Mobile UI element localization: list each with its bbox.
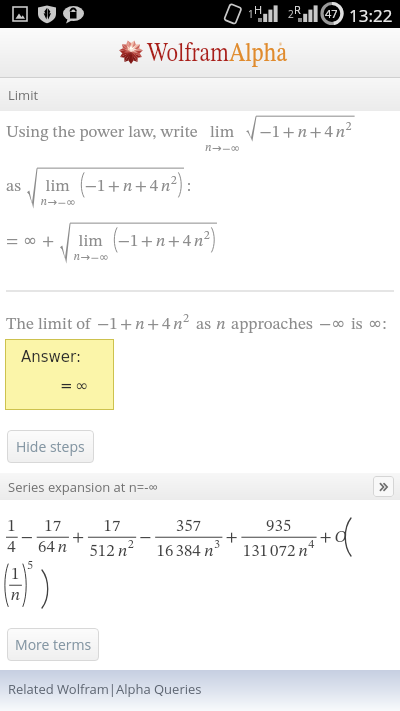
staticText: 47 <box>325 6 338 21</box>
staticText: 2 <box>288 7 294 21</box>
staticText: 13:22 <box>349 4 393 27</box>
staticText: = <box>60 377 73 394</box>
staticText: Related Wolfram|Alpha Queries <box>8 680 202 698</box>
button[interactable]: Series expansion at n=-∞ <box>0 473 400 500</box>
staticText: 1 <box>248 7 254 21</box>
staticText: Series expansion at n=-∞ <box>8 478 158 496</box>
staticText: ∞ <box>75 376 89 395</box>
button[interactable]: Limit <box>0 78 400 111</box>
staticText: R <box>294 2 301 17</box>
staticText: Limit <box>8 86 39 104</box>
button[interactable]: Related Wolfram|Alpha Queries <box>0 670 400 711</box>
staticText: Hide steps <box>16 437 85 456</box>
button[interactable]: Answer: <box>5 339 114 410</box>
staticText: H <box>254 2 263 17</box>
button[interactable]: Hide steps <box>7 430 94 463</box>
button[interactable]: Expand <box>373 476 394 497</box>
button[interactable]: Wolfram Alpha <box>0 0 400 77</box>
staticText: Answer: <box>21 348 82 365</box>
staticText: More terms <box>15 635 92 654</box>
button[interactable]: More terms <box>7 628 99 661</box>
